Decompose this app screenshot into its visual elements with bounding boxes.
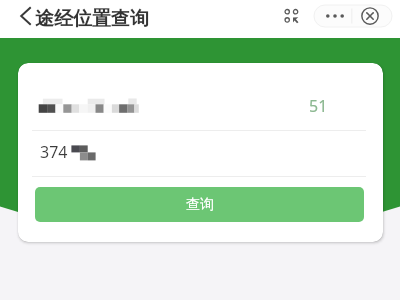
staticText: 374 bbox=[40, 141, 68, 163]
button[interactable]: 374 bbox=[18, 131, 383, 176]
button[interactable]: Close bbox=[352, 5, 388, 27]
button[interactable]: More options bbox=[314, 5, 352, 27]
button[interactable]: 查询 bbox=[35, 187, 364, 222]
button[interactable]: Back bbox=[14, 1, 36, 31]
button[interactable]: 51 bbox=[18, 63, 383, 130]
staticText: 51 bbox=[309, 95, 328, 117]
button[interactable]: Mini program bbox=[282, 6, 302, 26]
staticText: 查询 bbox=[186, 196, 214, 214]
staticText: 途经位置查询 bbox=[35, 7, 149, 31]
